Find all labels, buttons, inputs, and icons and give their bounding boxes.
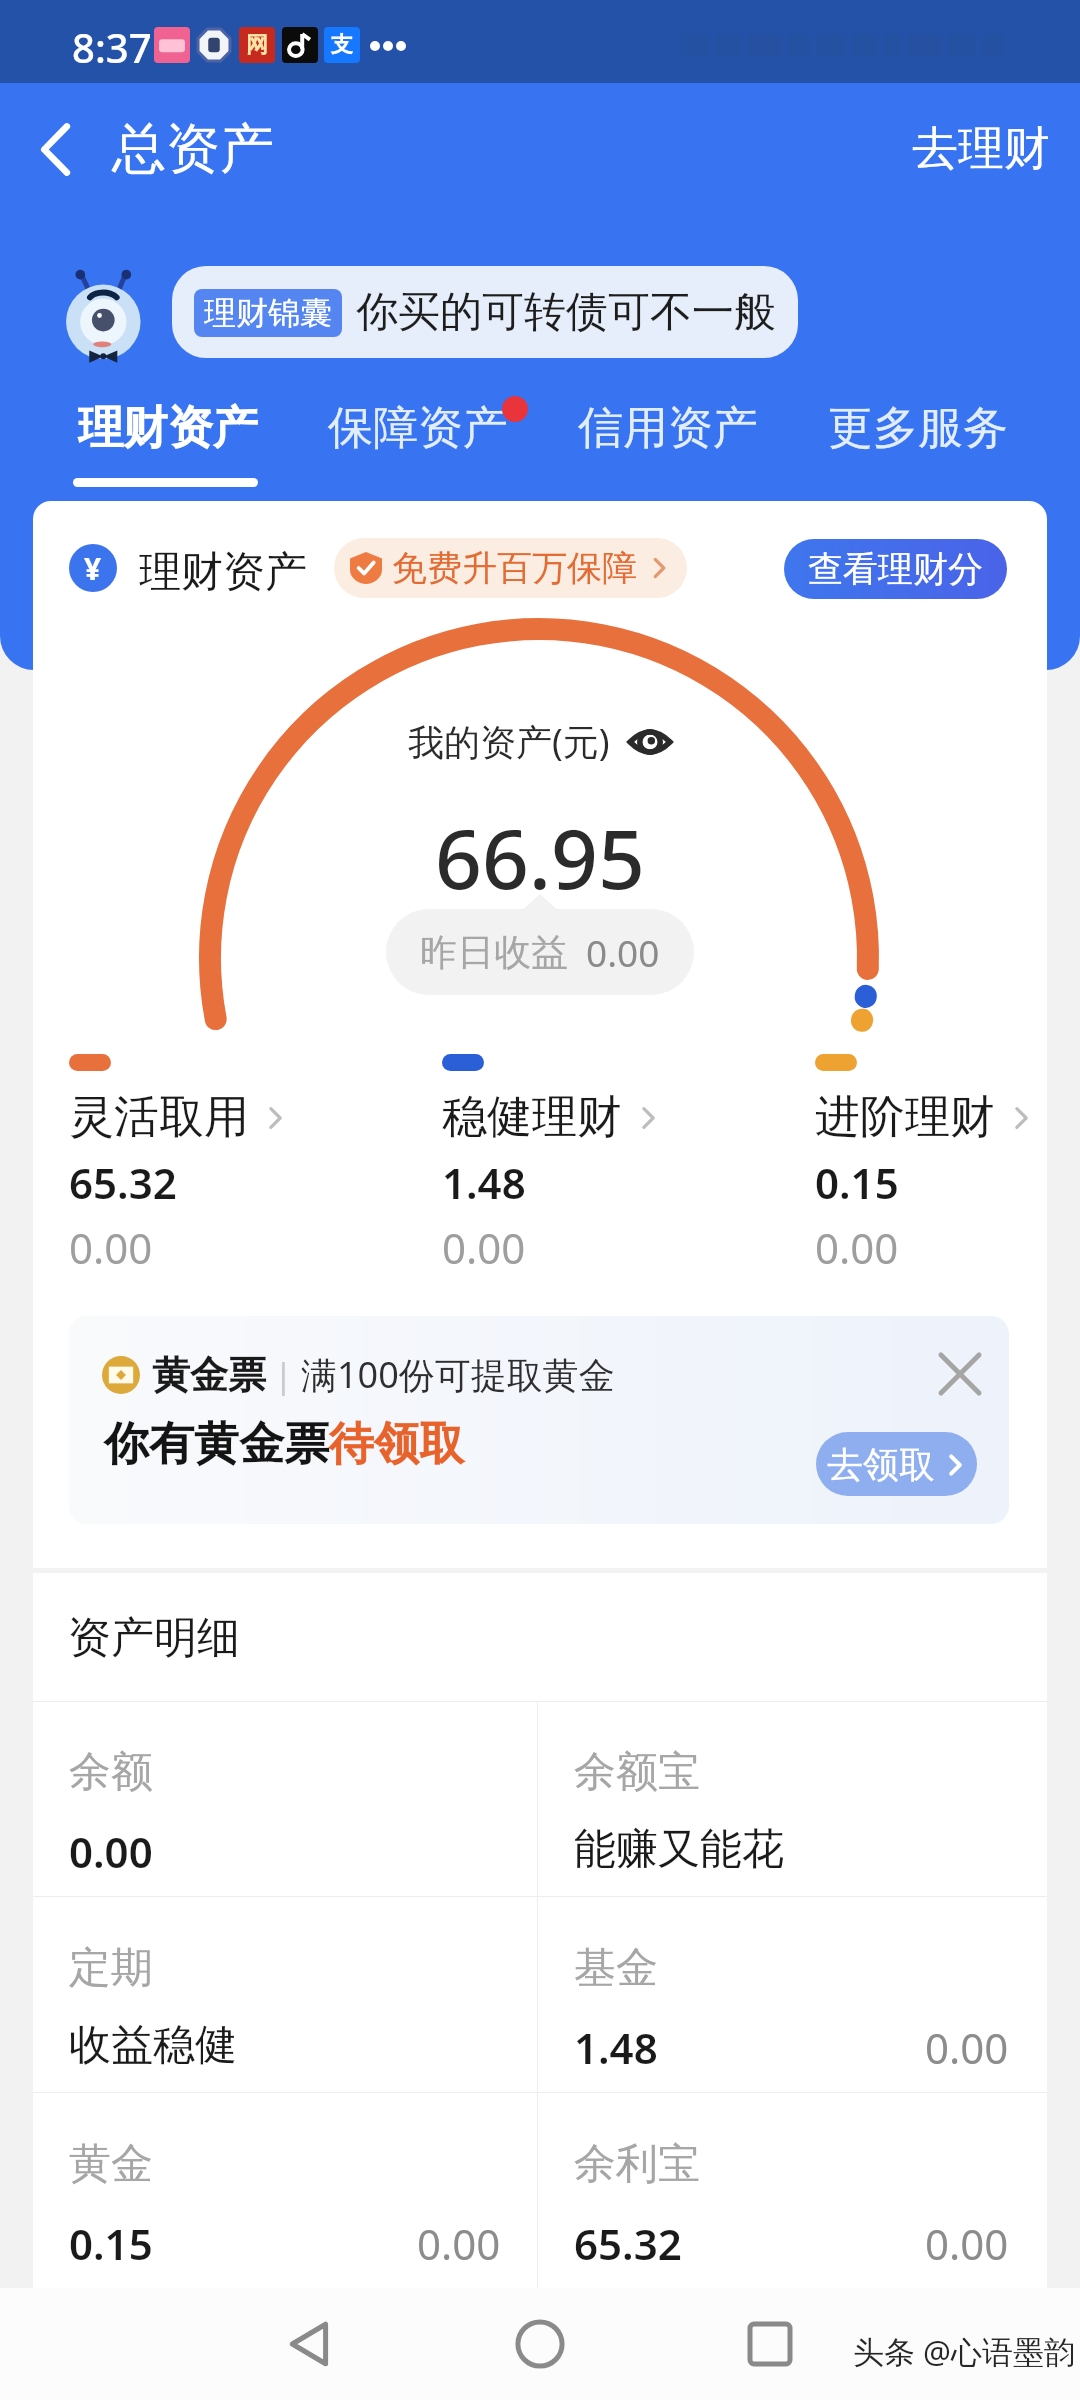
staticText: 免费升百万保障 [392, 546, 637, 590]
button[interactable]: 信用资产 [570, 400, 760, 495]
staticText: 收益稳健 [69, 2019, 237, 2072]
button[interactable]: 理财锦囊 [172, 266, 798, 358]
staticText: 总资产 [112, 115, 274, 183]
staticText: 网 [246, 31, 268, 59]
staticText: 0.00 [417, 2215, 501, 2272]
staticText: 理财锦囊 [204, 293, 332, 333]
staticText: 去理财 [912, 120, 1050, 178]
staticText: 基金 [574, 1942, 658, 1995]
staticText: 0.00 [69, 1219, 153, 1276]
staticText: 65.32 [69, 1154, 177, 1211]
staticText: 65.32 [574, 2215, 682, 2272]
staticText: 0.00 [925, 2215, 1009, 2272]
staticText: 余额宝 [574, 1746, 700, 1799]
staticText: 0.15 [815, 1154, 899, 1211]
staticText: 支 [331, 31, 353, 59]
staticText: 0.00 [815, 1219, 899, 1276]
staticText: 8:37 [72, 20, 152, 74]
button[interactable]: 去领取 [816, 1432, 977, 1496]
staticText: 理财资产 [139, 546, 307, 599]
button[interactable]: 黄金 [33, 2093, 537, 2289]
button[interactable]: 余额宝 [538, 1701, 1045, 1897]
staticText: 资产明细 [68, 1611, 240, 1665]
button[interactable]: 余利宝 [538, 2093, 1045, 2289]
button[interactable]: 保障资产 [320, 400, 510, 495]
button[interactable]: 更多服务 [820, 400, 1010, 495]
staticText: 理财资产 [78, 400, 258, 457]
staticText: 1.48 [574, 2019, 658, 2076]
button[interactable]: 进阶理财 [815, 1054, 1047, 1276]
button[interactable]: Back [0, 83, 112, 215]
staticText: 黄金 [69, 2138, 153, 2191]
staticText: 0.00 [586, 927, 660, 977]
staticText: 黄金票 [152, 1351, 266, 1399]
staticText: 你有黄金票 [104, 1416, 329, 1473]
button[interactable]: Toggle amount visibility [628, 725, 672, 759]
button[interactable]: 定期 [33, 1897, 537, 2093]
staticText: 能赚又能花 [574, 1823, 784, 1876]
staticText: 1.48 [442, 1154, 526, 1211]
staticText: 66.95 [435, 801, 645, 913]
button[interactable]: 黄金票 [69, 1316, 1009, 1524]
staticText: 灵活取用 [69, 1089, 249, 1146]
staticText: 0.00 [69, 1823, 153, 1880]
staticText: 昨日收益 [420, 929, 568, 976]
button[interactable]: 余额 [33, 1701, 537, 1897]
staticText: 查看理财分 [808, 547, 983, 591]
staticText: 头条 @心语墨韵 [853, 2330, 1075, 2372]
staticText: 保障资产 [328, 400, 508, 457]
button[interactable]: 稳健理财 [442, 1054, 772, 1276]
staticText: 去领取 [827, 1442, 935, 1487]
button[interactable]: Back [262, 2288, 358, 2400]
button[interactable]: Recent apps [722, 2288, 818, 2400]
staticText: 余额 [69, 1746, 153, 1799]
staticText: ¥ [84, 548, 102, 589]
staticText: 定期 [69, 1942, 153, 1995]
staticText: 待领取 [329, 1416, 464, 1473]
staticText: 更多服务 [828, 400, 1008, 457]
button[interactable]: 基金 [538, 1897, 1045, 2093]
staticText: 你买的可转债可不一般 [356, 286, 776, 339]
button[interactable]: 理财资产 [70, 400, 260, 495]
button[interactable]: Home [492, 2288, 588, 2400]
staticText: 余利宝 [574, 2138, 700, 2191]
staticText: 进阶理财 [815, 1089, 995, 1146]
staticText: 信用资产 [578, 400, 758, 457]
button[interactable]: 去理财 [898, 108, 1064, 190]
button[interactable]: 免费升百万保障 [334, 538, 687, 598]
button[interactable]: 灵活取用 [69, 1054, 399, 1276]
staticText: 0.00 [442, 1219, 526, 1276]
staticText: 0.15 [69, 2215, 153, 2272]
staticText: | [274, 1352, 293, 1398]
button[interactable]: 查看理财分 [784, 539, 1007, 599]
staticText: 稳健理财 [442, 1089, 622, 1146]
staticText: 满100份可提取黄金 [301, 1350, 615, 1399]
button[interactable]: Close [924, 1338, 996, 1410]
staticText: 我的资产(元) [408, 717, 610, 766]
staticText: 0.00 [925, 2019, 1009, 2076]
